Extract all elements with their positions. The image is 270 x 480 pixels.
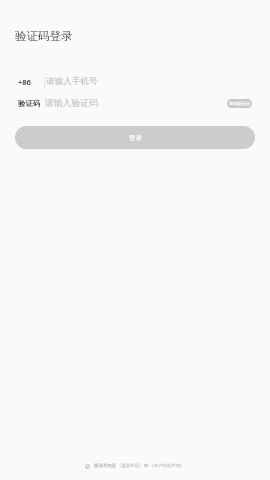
button[interactable]: Phone number field: [44, 73, 270, 90]
button[interactable]: 登录: [15, 126, 255, 149]
staticText: 获取验证码: [229, 101, 250, 106]
staticText: 和: [144, 463, 149, 469]
staticText: 验证码: [18, 99, 41, 108]
button[interactable]: 获取验证码: [227, 99, 252, 108]
staticText: 阅读并同意: [94, 463, 117, 469]
staticText: 请输入验证码: [45, 98, 98, 109]
staticText: 《服务协议》: [117, 463, 144, 469]
staticText: 《用户隐私声明》: [149, 463, 185, 469]
button[interactable]: Verification code field: [45, 95, 227, 111]
button[interactable]: Agree to terms checkbox: [85, 463, 185, 469]
staticText: 登录: [129, 134, 142, 142]
staticText: +86: [18, 77, 31, 87]
staticText: 验证码登录: [15, 29, 73, 43]
other: Agree to terms checkbox: [85, 464, 90, 469]
button[interactable]: +86: [0, 73, 44, 90]
staticText: 请输入手机号: [46, 76, 98, 87]
